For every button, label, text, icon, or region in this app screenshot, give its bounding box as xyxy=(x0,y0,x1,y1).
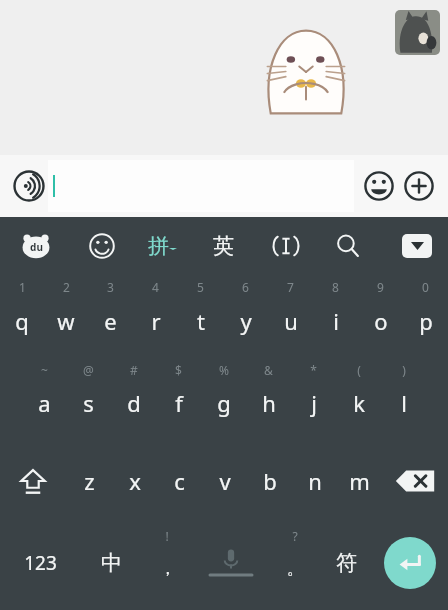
staticText: o xyxy=(374,306,388,336)
staticText: 中 xyxy=(101,550,122,576)
staticText: a xyxy=(38,388,51,418)
staticText: ) xyxy=(402,362,406,378)
button[interactable]: 9 xyxy=(358,275,403,358)
staticText: s xyxy=(83,388,94,418)
button[interactable]: Backspace xyxy=(382,440,448,522)
button[interactable]: 1 xyxy=(0,275,44,358)
staticText: 6 xyxy=(242,279,249,295)
button[interactable]: ? xyxy=(270,522,320,604)
button[interactable]: Emoji xyxy=(360,167,398,205)
button[interactable]: Voice input xyxy=(10,167,48,205)
staticText: 英 xyxy=(213,233,234,259)
staticText: 符 xyxy=(336,550,357,576)
staticText: 7 xyxy=(287,279,294,295)
staticText: u xyxy=(284,306,298,336)
button[interactable]: 4 xyxy=(133,275,178,358)
button[interactable]: 8 xyxy=(313,275,358,358)
button[interactable]: Enter xyxy=(372,522,448,604)
button[interactable]: m xyxy=(337,440,382,522)
button[interactable]: n xyxy=(292,440,337,522)
staticText: 5 xyxy=(197,279,204,295)
staticText: f xyxy=(175,388,183,418)
staticText: & xyxy=(264,362,273,378)
button[interactable]: % xyxy=(201,358,246,440)
button[interactable]: Shift xyxy=(0,440,66,522)
staticText: ， xyxy=(159,558,176,579)
staticText: r xyxy=(151,306,161,336)
button[interactable]: 2 xyxy=(44,275,88,358)
staticText: ? xyxy=(292,528,298,544)
staticText: 1 xyxy=(19,279,26,295)
staticText: ~ xyxy=(41,362,48,378)
staticText: y xyxy=(240,306,252,336)
button[interactable]: ! xyxy=(142,522,192,604)
button[interactable]: 符 xyxy=(320,522,372,604)
staticText: 拼 xyxy=(148,233,169,259)
staticText: i xyxy=(333,306,339,336)
staticText: n xyxy=(308,466,322,496)
button[interactable]: Search xyxy=(328,226,368,266)
button[interactable]: 7 xyxy=(268,275,313,358)
staticText: 8 xyxy=(332,279,339,295)
staticText: k xyxy=(353,388,365,418)
staticText: ! xyxy=(165,528,169,544)
staticText: q xyxy=(15,306,29,336)
staticText: m xyxy=(349,466,370,496)
button[interactable] xyxy=(48,160,354,212)
staticText: z xyxy=(84,466,95,496)
button[interactable]: Baidu input xyxy=(16,226,56,266)
button[interactable]: Hide keyboard xyxy=(402,234,432,258)
staticText: p xyxy=(419,306,433,336)
staticText: 9 xyxy=(377,279,384,295)
staticText: h xyxy=(262,388,276,418)
button[interactable]: ~ xyxy=(22,358,66,440)
button[interactable]: Avatar xyxy=(395,10,440,55)
staticText: % xyxy=(219,362,229,378)
button[interactable]: Emoji panel xyxy=(82,226,122,266)
staticText: w xyxy=(57,306,75,336)
button[interactable]: 0 xyxy=(403,275,448,358)
button[interactable]: * xyxy=(291,358,336,440)
staticText: e xyxy=(104,306,117,336)
button[interactable]: More xyxy=(400,167,438,205)
button[interactable]: Space xyxy=(192,522,270,604)
staticText: j xyxy=(311,388,317,418)
button[interactable]: z xyxy=(66,440,112,522)
button[interactable]: 拼 xyxy=(144,233,181,259)
button[interactable]: & xyxy=(246,358,291,440)
staticText: d xyxy=(127,388,141,418)
staticText: 123 xyxy=(24,550,57,576)
button[interactable]: @ xyxy=(66,358,111,440)
staticText: l xyxy=(401,388,407,418)
button[interactable]: 123 xyxy=(0,522,80,604)
button[interactable]: c xyxy=(157,440,202,522)
button[interactable]: 中 xyxy=(80,522,142,604)
button[interactable]: x xyxy=(112,440,157,522)
staticText: v xyxy=(219,466,231,496)
button[interactable]: ) xyxy=(381,358,426,440)
button[interactable]: Sticker xyxy=(264,26,348,118)
staticText: $ xyxy=(175,362,182,378)
button[interactable]: b xyxy=(247,440,292,522)
staticText: 0 xyxy=(422,279,429,295)
staticText: 3 xyxy=(107,279,114,295)
button[interactable]: Cursor move xyxy=(266,226,306,266)
button[interactable]: ( xyxy=(336,358,381,440)
staticText: b xyxy=(263,466,277,496)
button[interactable]: 3 xyxy=(88,275,133,358)
button[interactable]: $ xyxy=(156,358,201,440)
staticText: 。 xyxy=(287,558,304,579)
button[interactable]: v xyxy=(202,440,247,522)
button[interactable]: # xyxy=(111,358,156,440)
staticText: c xyxy=(174,466,185,496)
staticText: ( xyxy=(357,362,361,378)
button[interactable]: 5 xyxy=(178,275,223,358)
staticText: 4 xyxy=(152,279,159,295)
staticText: g xyxy=(217,388,231,418)
staticText: du xyxy=(30,240,43,254)
staticText: * xyxy=(310,362,317,378)
staticText: @ xyxy=(83,362,94,378)
button[interactable]: 英 xyxy=(207,233,240,259)
staticText: t xyxy=(197,306,205,336)
button[interactable]: 6 xyxy=(223,275,268,358)
